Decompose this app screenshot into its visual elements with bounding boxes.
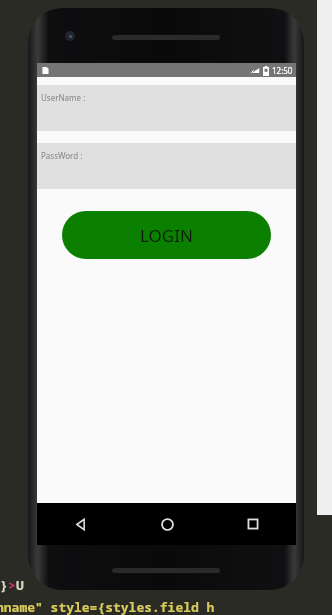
button[interactable]: Recent apps bbox=[210, 503, 296, 545]
staticText: U bbox=[16, 576, 24, 594]
button[interactable]: PassWord : bbox=[37, 143, 296, 189]
staticText: > bbox=[8, 576, 16, 594]
staticText: PassWord : bbox=[41, 150, 83, 161]
button[interactable]: Home bbox=[124, 503, 210, 545]
staticText: LOGIN bbox=[140, 224, 193, 247]
staticText: 12:50 bbox=[272, 65, 293, 76]
button[interactable]: Back bbox=[37, 503, 124, 545]
button[interactable]: LOGIN bbox=[62, 211, 271, 259]
staticText: nname" style={styles.field h bbox=[0, 598, 215, 615]
staticText: UserName : bbox=[41, 92, 86, 103]
button[interactable]: UserName : bbox=[37, 85, 296, 131]
staticText: } bbox=[0, 576, 8, 594]
